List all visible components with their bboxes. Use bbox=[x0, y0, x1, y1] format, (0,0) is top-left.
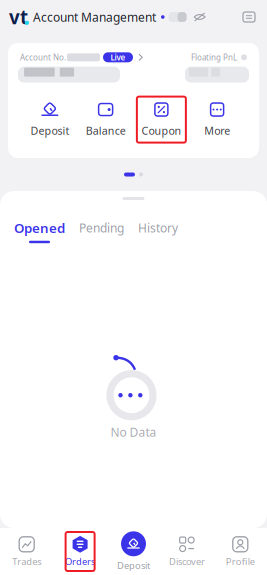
staticText: Coupon bbox=[141, 123, 181, 138]
button[interactable]: Pending bbox=[65, 220, 124, 242]
button[interactable]: Opened bbox=[14, 219, 65, 243]
button[interactable]: Discover bbox=[160, 531, 214, 571]
staticText: Pending bbox=[79, 220, 124, 236]
staticText: vt bbox=[9, 5, 28, 29]
staticText: Profile bbox=[226, 555, 255, 568]
button[interactable]: Messages bbox=[242, 11, 267, 23]
staticText: No Data bbox=[110, 424, 156, 440]
button[interactable]: Profile bbox=[214, 531, 267, 571]
button[interactable]: Deposit bbox=[107, 530, 160, 572]
staticText: Account No. bbox=[20, 52, 66, 63]
button[interactable]: History bbox=[124, 220, 178, 242]
staticText: Live bbox=[110, 52, 125, 63]
button[interactable]: Orders bbox=[53, 531, 107, 571]
staticText: Balance bbox=[86, 123, 126, 138]
staticText: Discover bbox=[169, 555, 205, 568]
staticText: Deposit bbox=[117, 559, 150, 572]
button[interactable]: More bbox=[193, 97, 242, 143]
button[interactable]: Trades bbox=[0, 531, 53, 571]
staticText: History bbox=[138, 220, 178, 236]
staticText: Deposit bbox=[30, 123, 69, 138]
staticText: Orders bbox=[65, 555, 95, 568]
button[interactable]: Coupon bbox=[137, 97, 186, 143]
button[interactable]: Balance bbox=[81, 97, 130, 143]
staticText: Trades bbox=[12, 555, 41, 568]
staticText: Floating PnL bbox=[191, 52, 237, 63]
button[interactable]: Deposit bbox=[25, 97, 74, 143]
staticText: Opened bbox=[14, 219, 65, 237]
staticText: More bbox=[204, 123, 230, 138]
staticText: Account Management bbox=[33, 9, 156, 25]
